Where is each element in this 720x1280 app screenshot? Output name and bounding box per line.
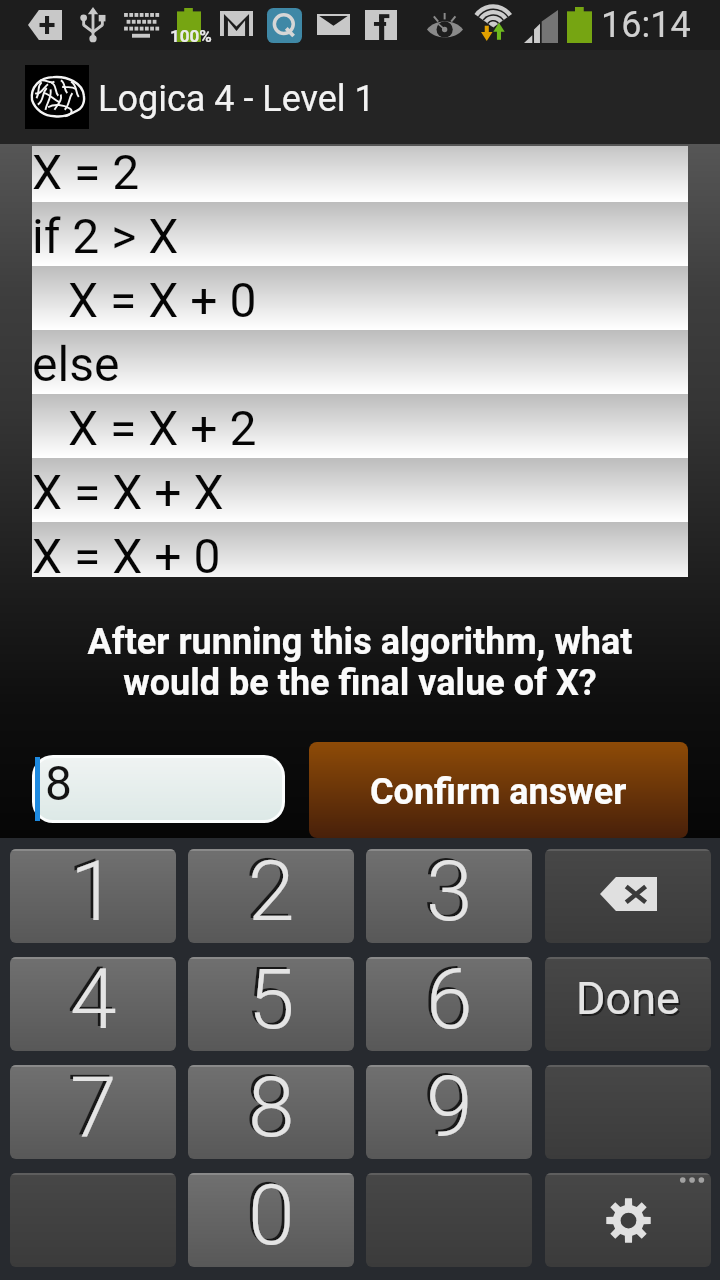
staticText: 8: [45, 758, 72, 811]
staticText: X = X + 0: [68, 272, 257, 328]
staticText: 9: [423, 1065, 470, 1150]
staticText: After running this algorithm, what would…: [60, 621, 660, 704]
button[interactable]: 2: [188, 849, 354, 943]
staticText: 9: [426, 1065, 473, 1152]
button[interactable]: if 2 > X: [32, 202, 688, 266]
staticText: X = X + X: [32, 464, 224, 520]
staticText: Done: [578, 974, 682, 1027]
button[interactable]: else: [32, 330, 688, 394]
staticText: 5: [248, 957, 295, 1044]
button[interactable]: 8: [188, 1065, 354, 1159]
button[interactable]: Blank key: [10, 1173, 176, 1267]
staticText: 6: [423, 957, 470, 1042]
button[interactable]: 7: [10, 1065, 176, 1159]
button[interactable]: Settings: [545, 1173, 711, 1267]
button[interactable]: Blank key: [545, 1065, 711, 1159]
staticText: 3: [423, 849, 470, 934]
button[interactable]: X = X + 0: [32, 266, 688, 330]
button[interactable]: Blank key: [366, 1173, 532, 1267]
staticText: 4: [67, 957, 114, 1042]
button[interactable]: 4: [10, 957, 176, 1051]
staticText: 16:14: [601, 4, 691, 46]
staticText: Done: [576, 972, 680, 1025]
button[interactable]: X = 2: [32, 146, 688, 202]
button[interactable]: 5: [188, 957, 354, 1051]
button[interactable]: Backspace: [545, 849, 711, 943]
button[interactable]: 6: [366, 957, 532, 1051]
staticText: 1: [70, 849, 117, 936]
staticText: 100%: [170, 26, 212, 46]
staticText: 6: [426, 957, 473, 1044]
button[interactable]: 9: [366, 1065, 532, 1159]
staticText: else: [32, 336, 120, 392]
button[interactable]: X = X + X: [32, 458, 688, 522]
button[interactable]: X = X + 2: [32, 394, 688, 458]
staticText: 8: [245, 1065, 292, 1150]
staticText: 3: [426, 849, 473, 936]
button[interactable]: 1: [10, 849, 176, 943]
button[interactable]: 0: [188, 1173, 354, 1267]
staticText: X = X + 2: [68, 400, 257, 456]
button[interactable]: 3: [366, 849, 532, 943]
staticText: X = 2: [32, 146, 140, 200]
button[interactable]: Confirm answer: [309, 742, 688, 838]
button[interactable]: Done: [545, 957, 711, 1051]
staticText: Logica 4 - Level 1: [98, 78, 375, 120]
staticText: 7: [67, 1065, 114, 1150]
staticText: 5: [245, 957, 292, 1042]
staticText: 4: [70, 957, 117, 1044]
staticText: X = X + 0: [32, 528, 221, 577]
staticText: 1: [67, 849, 114, 934]
staticText: 0: [248, 1173, 295, 1260]
button[interactable]: X = X + 0: [32, 522, 688, 577]
staticText: if 2 > X: [32, 208, 179, 264]
staticText: Confirm answer: [370, 771, 627, 813]
staticText: 0: [245, 1173, 292, 1258]
staticText: 2: [248, 849, 295, 936]
staticText: 7: [70, 1065, 117, 1152]
staticText: 8: [248, 1065, 295, 1152]
staticText: 2: [245, 849, 292, 934]
button[interactable]: 8: [35, 758, 282, 820]
